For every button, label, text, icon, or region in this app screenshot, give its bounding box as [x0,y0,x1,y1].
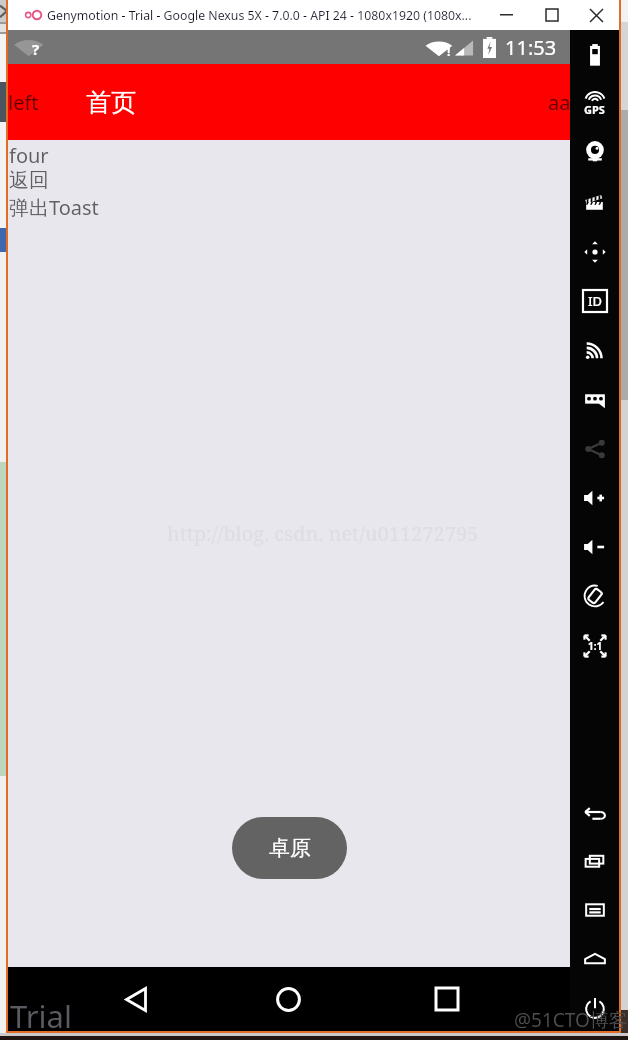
button[interactable]: Back [570,787,619,836]
staticText: GPS [584,102,605,117]
staticText: Genymotion - Trial - Google Nexus 5X - 7… [47,7,472,24]
button[interactable]: Scale 1 to 1 [570,621,619,670]
button[interactable]: Identifiers [570,276,619,325]
staticText: Trial [10,995,72,1037]
button[interactable]: Volume down [570,522,619,571]
button[interactable]: Network [570,325,619,374]
button[interactable]: Recent apps [570,836,619,885]
button[interactable]: Volume up [570,473,619,522]
button[interactable]: Menu [570,885,619,934]
button[interactable]: Power [570,983,619,1032]
button[interactable]: SMS [570,375,619,424]
button[interactable]: 返回 [9,168,49,194]
button[interactable]: Battery [570,30,619,79]
button[interactable]: Share [570,424,619,473]
staticText: 1:1 [588,639,603,653]
button[interactable]: GPS [570,79,619,128]
button[interactable]: Maximize [529,0,574,30]
staticText: ! [447,43,451,59]
button[interactable]: Home [570,934,619,983]
button[interactable]: Minimize [484,0,529,30]
button[interactable]: left [8,89,39,116]
staticText: @51CTO博客 [514,1007,628,1033]
button[interactable]: Recents [419,971,475,1027]
staticText: ? [32,39,40,59]
button[interactable]: Rotate [570,571,619,620]
button[interactable]: 卓原 [232,817,347,879]
button[interactable]: Close [574,0,619,30]
staticText: ID [588,292,603,310]
staticText: http://blog. csdn. net/u011272795 [167,520,479,547]
staticText: 11:53 [505,34,557,61]
button[interactable]: Home [260,971,316,1027]
button[interactable]: Virtual sensors [570,227,619,276]
staticText: 卓原 [269,835,311,861]
button[interactable]: Record screen [570,178,619,227]
button[interactable]: four [9,142,49,168]
staticText: 首页 [86,87,136,118]
button[interactable]: 弹出Toast [9,194,99,220]
button[interactable]: Camera [570,128,619,177]
button[interactable]: Back [108,971,164,1027]
button[interactable]: aa [548,89,571,116]
